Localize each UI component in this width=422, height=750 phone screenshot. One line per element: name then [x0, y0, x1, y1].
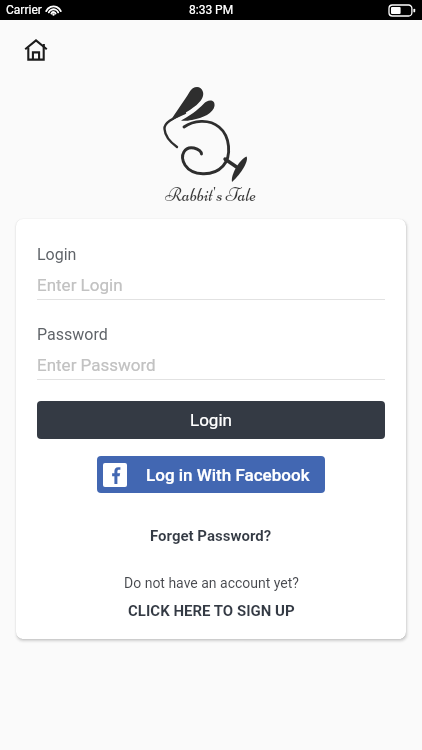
staticText: CLICK HERE TO SIGN UP: [128, 602, 295, 620]
button[interactable]: Login: [37, 401, 385, 439]
staticText: Log in With Facebook: [146, 465, 310, 485]
staticText: Password: [37, 325, 108, 344]
staticText: Forget Password?: [150, 527, 272, 545]
button[interactable]: Log in With Facebook: [97, 456, 325, 493]
staticText: Login: [190, 410, 232, 430]
staticText: Carrier: [6, 3, 42, 17]
staticText: Login: [37, 245, 77, 264]
staticText: Enter Login: [37, 275, 123, 295]
staticText: 8:33 PM: [189, 3, 234, 17]
button[interactable]: CLICK HERE TO SIGN UP: [122, 599, 301, 623]
staticText: Rabbit's Tale: [165, 183, 257, 206]
button[interactable]: Home: [20, 34, 52, 66]
staticText: Enter Password: [37, 355, 156, 375]
staticText: Do not have an account yet?: [124, 575, 299, 591]
button[interactable]: Forget Password?: [144, 524, 278, 548]
